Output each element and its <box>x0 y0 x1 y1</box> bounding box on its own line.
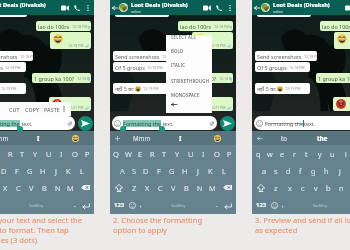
button[interactable]: Back <box>166 98 212 111</box>
button[interactable]: H <box>178 162 191 179</box>
button[interactable]: P <box>81 145 94 162</box>
button[interactable]: F <box>10 162 23 179</box>
button[interactable]: a <box>258 162 270 179</box>
button[interactable]: Enter <box>222 200 233 211</box>
button[interactable]: z <box>269 179 283 196</box>
button[interactable]: I <box>55 145 68 162</box>
button[interactable]: h <box>320 162 333 179</box>
button[interactable]: J <box>49 162 62 179</box>
button[interactable]: P <box>223 145 236 162</box>
button[interactable]: Formatting the <box>254 116 350 130</box>
button[interactable]: n <box>335 179 348 196</box>
button[interactable]: V <box>25 179 38 196</box>
button[interactable]: Voice call <box>71 1 82 15</box>
button[interactable]: b <box>322 179 335 196</box>
button[interactable]: CUT <box>8 102 21 116</box>
button[interactable]: L <box>217 162 230 179</box>
button[interactable]: V <box>167 179 180 196</box>
button[interactable]: x <box>283 179 296 196</box>
button[interactable]: f <box>294 162 307 179</box>
button[interactable]: Shift <box>110 179 127 196</box>
button[interactable]: Z <box>127 179 141 196</box>
button[interactable]: K <box>204 162 217 179</box>
button[interactable]: c <box>296 179 309 196</box>
button[interactable]: O <box>210 145 223 162</box>
button[interactable]: C <box>12 179 25 196</box>
button[interactable]: N <box>193 179 206 196</box>
button[interactable]: u <box>326 145 339 162</box>
button[interactable]: e <box>276 145 288 162</box>
button[interactable]: Q <box>110 145 122 162</box>
button[interactable]: More <box>59 102 68 116</box>
button[interactable]: Back <box>252 1 261 14</box>
button[interactable]: H <box>36 162 49 179</box>
button[interactable]: y <box>313 145 326 162</box>
button[interactable]: Enter <box>80 200 91 211</box>
button[interactable]: N <box>51 179 64 196</box>
button[interactable]: Y <box>171 145 184 162</box>
button[interactable]: Send <box>220 116 235 131</box>
button[interactable]: r <box>288 145 300 162</box>
button[interactable]: X <box>141 179 154 196</box>
button[interactable]: MONOSPACE <box>166 88 212 101</box>
button[interactable]: Emoji <box>128 201 136 209</box>
button[interactable]: Voice call <box>213 1 224 15</box>
button[interactable]: I <box>197 145 210 162</box>
button[interactable]: K <box>62 162 75 179</box>
button[interactable]: Video call <box>201 1 213 15</box>
button[interactable]: Shift <box>252 179 269 196</box>
button[interactable]: s <box>270 162 282 179</box>
button[interactable]: STRIKETHROUGH <box>166 74 212 87</box>
button[interactable]: D <box>0 162 10 179</box>
button[interactable]: Video call <box>59 1 71 15</box>
button[interactable]: j <box>333 162 346 179</box>
button[interactable]: More options <box>82 1 93 15</box>
button[interactable]: PASTE <box>43 102 61 116</box>
button[interactable]: L <box>75 162 88 179</box>
button[interactable]: U <box>184 145 197 162</box>
button[interactable]: O <box>68 145 81 162</box>
button[interactable]: M <box>64 179 77 196</box>
button[interactable]: Forma <box>0 116 75 130</box>
button[interactable]: Backspace <box>219 179 236 196</box>
button[interactable]: X <box>0 179 12 196</box>
button[interactable]: Formatting the <box>112 116 217 130</box>
button[interactable]: 123 <box>255 200 268 210</box>
button[interactable]: R <box>146 145 158 162</box>
button[interactable]: COPY <box>24 102 41 116</box>
button[interactable]: B <box>180 179 193 196</box>
button[interactable]: g <box>307 162 320 179</box>
button[interactable]: Send <box>78 116 93 131</box>
button[interactable]: d <box>282 162 294 179</box>
button[interactable]: E <box>134 145 146 162</box>
button[interactable]: W <box>122 145 134 162</box>
button[interactable]: A <box>116 162 128 179</box>
button[interactable]: C <box>154 179 167 196</box>
button[interactable]: Video call <box>343 1 350 15</box>
button[interactable]: w <box>264 145 276 162</box>
button[interactable]: v <box>309 179 322 196</box>
button[interactable]: i <box>339 145 350 162</box>
button[interactable]: Backspace <box>77 179 94 196</box>
button[interactable]: G <box>165 162 178 179</box>
button[interactable]: T <box>158 145 171 162</box>
button[interactable]: U <box>42 145 55 162</box>
button[interactable]: Back <box>110 1 119 14</box>
button[interactable]: T <box>16 145 29 162</box>
button[interactable]: 123 <box>113 200 126 210</box>
button[interactable]: q <box>252 145 264 162</box>
button[interactable]: D <box>140 162 152 179</box>
button[interactable]: Y <box>29 145 42 162</box>
button[interactable]: Emoji <box>270 201 278 209</box>
button[interactable]: ITALIC <box>166 58 212 71</box>
button[interactable]: B <box>38 179 51 196</box>
button[interactable]: F <box>152 162 165 179</box>
button[interactable]: R <box>4 145 16 162</box>
button[interactable]: M <box>206 179 219 196</box>
button[interactable]: BOLD <box>166 44 212 57</box>
button[interactable]: G <box>23 162 36 179</box>
button[interactable]: t <box>300 145 313 162</box>
